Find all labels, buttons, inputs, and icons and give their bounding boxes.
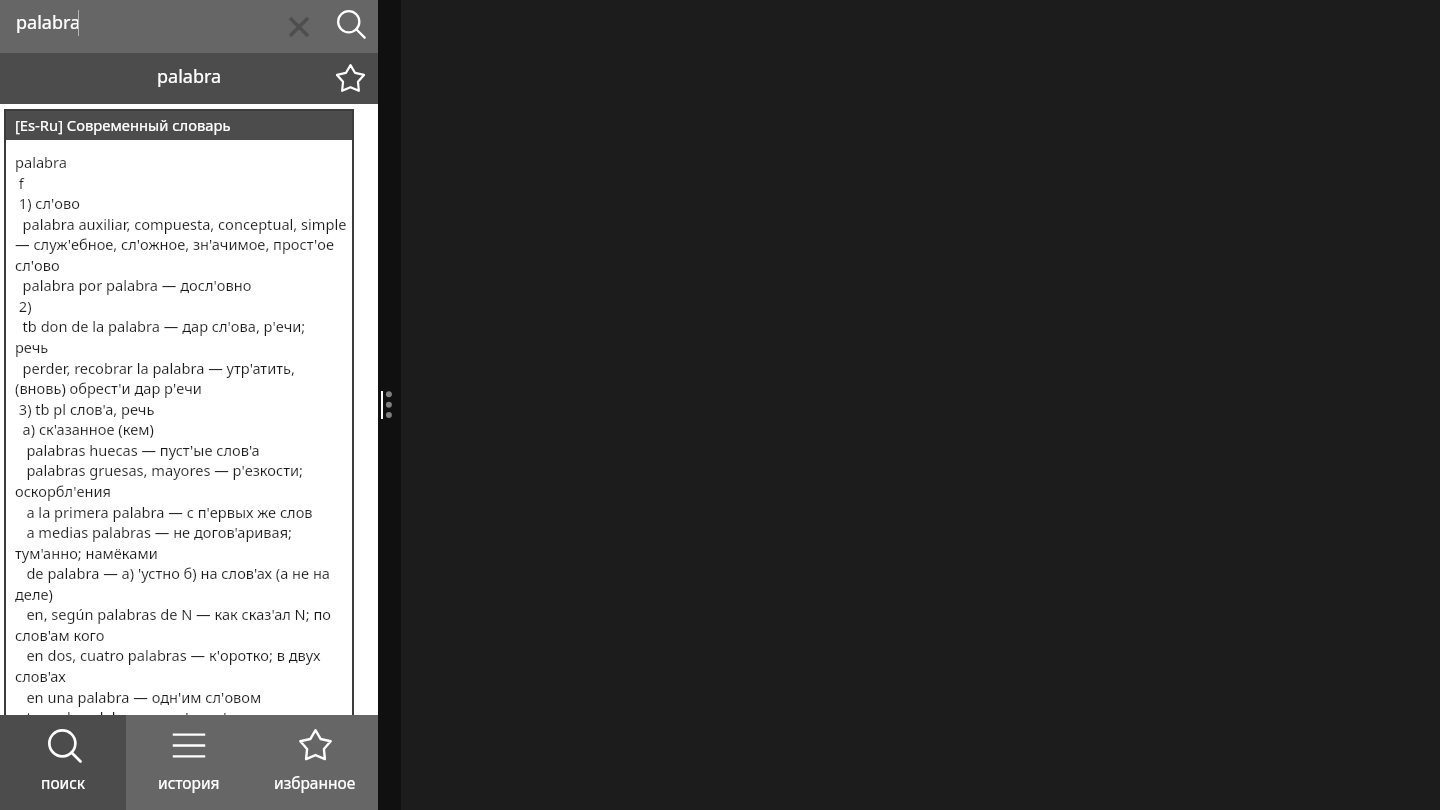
staticText: perder, recobrar la palabra — утр'атить, <box>15 358 295 378</box>
staticText: en, según palabras de N — как сказ'ал N;… <box>15 604 331 624</box>
staticText: tener la palabra — име'ть сл'ово <box>15 707 253 715</box>
staticText: а) ск'азанное (кем) <box>15 419 154 439</box>
staticText: деле) <box>15 584 53 604</box>
staticText: a la primera palabra — с п'ервых же слов <box>15 502 313 522</box>
staticText: речь <box>15 337 49 357</box>
staticText: слов'ам кого <box>15 625 105 645</box>
staticText: palabra auxiliar, compuesta, conceptual,… <box>15 214 347 234</box>
button[interactable]: поиск <box>0 715 126 810</box>
staticText: тум'анно; намёками <box>15 543 158 563</box>
staticText: tb don de la palabra — дар сл'ова, р'ечи… <box>15 316 306 336</box>
staticText: en dos, cuatro palabras — к'оротко; в дв… <box>15 645 321 665</box>
button[interactable]: Clear text <box>278 0 320 53</box>
staticText: 2) <box>15 296 32 316</box>
staticText: de palabra — a) 'устно б) на слов'ах (а … <box>15 563 330 583</box>
staticText: en una palabra — одн'им сл'овом <box>15 687 262 707</box>
button[interactable]: избранное <box>252 715 378 810</box>
staticText: palabras gruesas, mayores — р'езкости; <box>15 460 303 480</box>
staticText: поиск <box>41 772 86 793</box>
staticText: (вновь) обрест'и дар р'ечи <box>15 378 202 398</box>
staticText: a medias palabras — не догов'аривая; <box>15 522 293 542</box>
staticText: слов'ах <box>15 666 66 686</box>
staticText: palabra por palabra — досл'овно <box>15 275 252 295</box>
staticText: palabra <box>157 64 222 89</box>
staticText: — служ'ебное, сл'ожное, зн'ачимое, прост… <box>15 234 334 254</box>
staticText: 3) tb pl слов'а, речь <box>15 399 155 419</box>
staticText: palabras huecas — пуст'ые слов'а <box>15 440 260 460</box>
button[interactable]: Resize panel <box>384 390 394 419</box>
staticText: оскорбл'ения <box>15 481 111 501</box>
button[interactable]: Search <box>328 0 378 53</box>
staticText: избранное <box>274 772 356 793</box>
button[interactable]: Add to favourites <box>324 52 376 103</box>
staticText: 1) сл'ово <box>15 193 80 213</box>
staticText: сл'ово <box>15 255 60 275</box>
staticText: palabra <box>15 152 68 172</box>
staticText: история <box>158 772 220 793</box>
button[interactable]: история <box>126 715 252 810</box>
staticText: f <box>15 173 24 193</box>
staticText: palabra <box>16 10 81 35</box>
staticText: [Es-Ru] Современный словарь <box>15 115 231 135</box>
